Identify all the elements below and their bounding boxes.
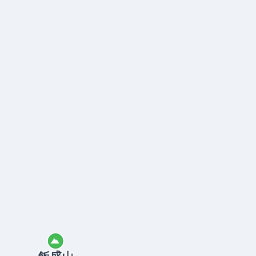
staticText: 飯盛山	[38, 248, 74, 256]
staticText: 飯盛山	[39, 248, 75, 256]
staticText: 飯盛山	[38, 249, 74, 256]
button[interactable]: 飯盛山	[31, 230, 81, 256]
staticText: 飯盛山	[37, 249, 73, 256]
staticText: 飯盛山	[37, 250, 73, 256]
staticText: 飯盛山	[37, 248, 73, 256]
staticText: 飯盛山	[39, 249, 75, 256]
staticText: 飯盛山	[38, 250, 74, 256]
staticText: 飯盛山	[39, 250, 75, 256]
